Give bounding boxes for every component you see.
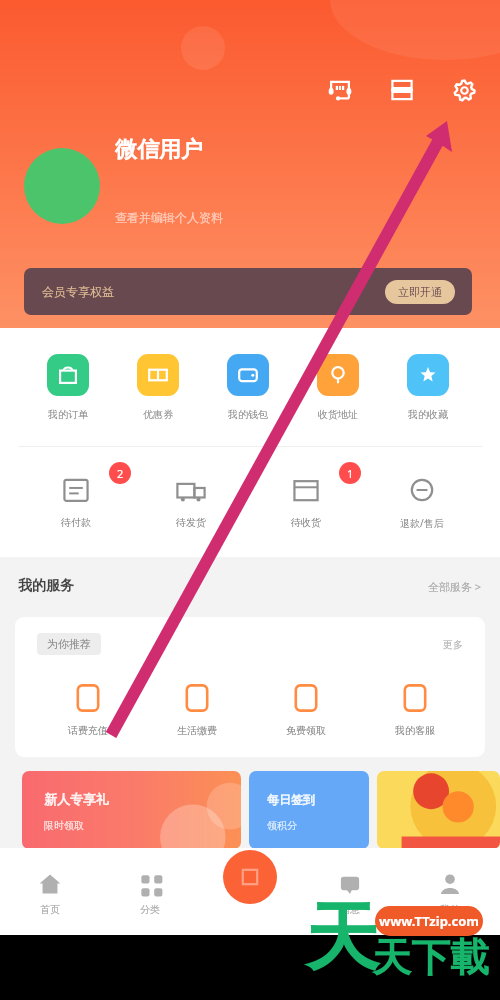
button[interactable] (377, 771, 500, 849)
button[interactable]: 我的钱包 (203, 354, 293, 421)
staticText: 待付款 (61, 516, 91, 529)
staticText: 天 (305, 892, 379, 985)
staticText: 微信用户 (115, 136, 203, 164)
button[interactable]: 免费领取 (251, 683, 360, 737)
staticText: 我的 (440, 903, 460, 916)
staticText: 限时领取 (44, 819, 84, 832)
button[interactable]: 退款/售后 (364, 473, 480, 530)
staticText: 新人专享礼 (44, 791, 109, 807)
button[interactable]: 待发货 (133, 473, 248, 529)
button[interactable]: 我的订单 (23, 354, 113, 421)
button[interactable]: Scan (388, 76, 416, 104)
button[interactable]: 分类 (100, 872, 200, 916)
button[interactable]: 我的客服 (360, 683, 469, 737)
button[interactable]: 新人专享礼 (22, 771, 241, 849)
staticText: 我的客服 (395, 724, 435, 737)
staticText: 我的服务 (18, 577, 74, 595)
button[interactable]: 我的收藏 (383, 354, 473, 421)
button[interactable]: Settings (450, 76, 478, 104)
button[interactable]: 立即开通 (385, 280, 455, 304)
staticText: 首页 (40, 903, 60, 916)
staticText: 领积分 (267, 819, 297, 832)
button[interactable]: 2 (18, 473, 133, 529)
staticText: 全部服务 > (428, 579, 482, 594)
staticText: 我的订单 (48, 408, 88, 421)
staticText: 为你推荐 (47, 637, 91, 651)
staticText: 优惠券 (143, 408, 173, 421)
button[interactable]: 我的 (400, 872, 500, 916)
button[interactable]: 全部服务 > (428, 579, 482, 594)
staticText: 分类 (140, 903, 160, 916)
staticText: www.TTzip.com (379, 912, 480, 930)
staticText: 2 (117, 466, 124, 481)
staticText: 1 (347, 466, 354, 481)
button[interactable]: 话费充值 (34, 683, 142, 737)
staticText: 收货地址 (318, 408, 358, 421)
staticText: 消息 (340, 903, 360, 916)
staticText: 待发货 (176, 516, 206, 529)
staticText: 待收货 (291, 516, 321, 529)
button[interactable]: 生活缴费 (142, 683, 251, 737)
button[interactable]: Profile photo (24, 148, 100, 224)
button[interactable]: Customer service (326, 76, 354, 104)
button[interactable]: 1 (248, 473, 364, 529)
button[interactable]: 收货地址 (293, 354, 383, 421)
staticText: 立即开通 (398, 285, 442, 299)
button[interactable]: 首页 (0, 872, 100, 916)
staticText: 我的钱包 (228, 408, 268, 421)
button[interactable]: Scan (223, 850, 277, 904)
button[interactable]: 消息 (300, 872, 400, 916)
staticText: 生活缴费 (177, 724, 217, 737)
staticText: 会员专享权益 (42, 284, 114, 299)
staticText: 话费充值 (68, 724, 108, 737)
button[interactable]: 会员专享权益 (24, 268, 472, 315)
staticText: 每日签到 (267, 792, 315, 807)
button[interactable]: 每日签到 (249, 771, 369, 849)
staticText: 我的收藏 (408, 408, 448, 421)
staticText: 查看并编辑个人资料 (115, 210, 223, 225)
staticText: 免费领取 (286, 724, 326, 737)
staticText: 天下載 (372, 933, 489, 982)
button[interactable]: 优惠券 (113, 354, 203, 421)
staticText: 退款/售后 (400, 516, 444, 530)
staticText: 更多 (443, 638, 463, 651)
